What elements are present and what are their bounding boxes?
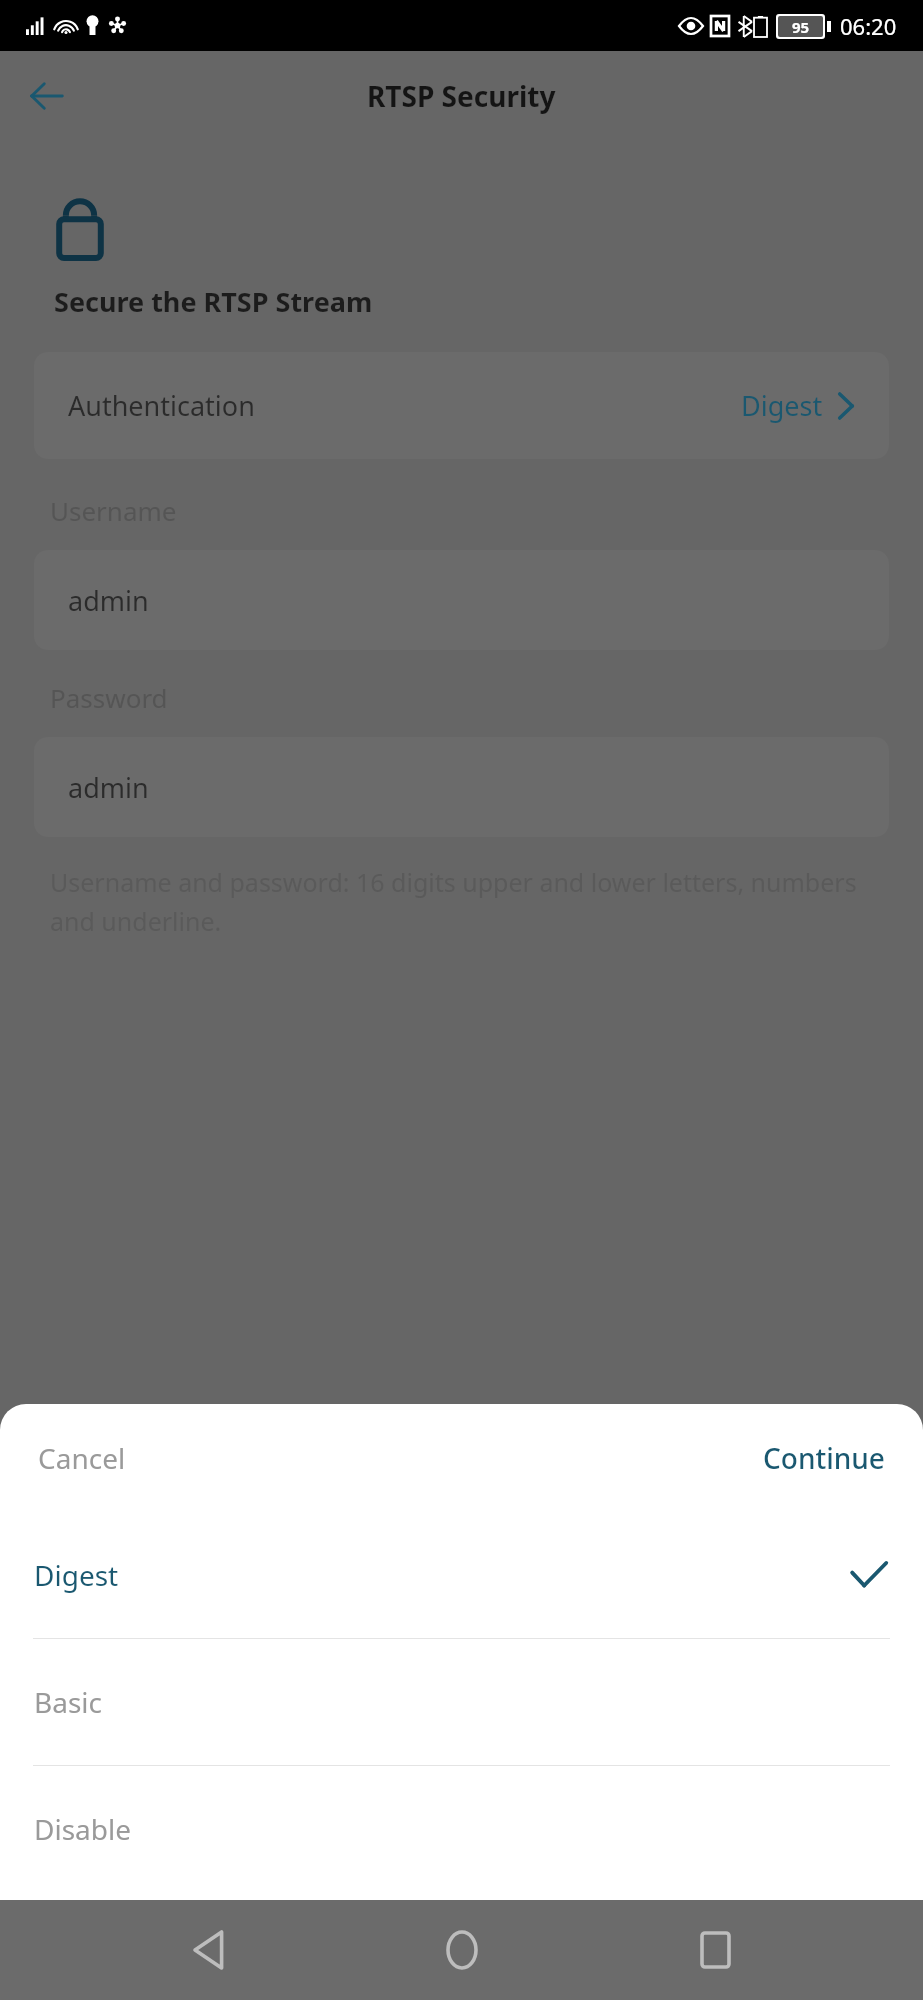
staticText: 06:20 — [840, 11, 897, 41]
button[interactable]: Home — [417, 1905, 507, 1995]
staticText: Authentication — [68, 387, 255, 424]
button[interactable]: Basic — [0, 1639, 923, 1765]
button[interactable]: Recents — [670, 1905, 760, 1995]
button[interactable]: admin — [34, 737, 889, 837]
staticText: Digest — [741, 387, 823, 424]
staticText: Password — [50, 680, 168, 715]
staticText: RTSP Security — [367, 77, 556, 115]
staticText: admin — [68, 582, 149, 619]
button[interactable]: Continue — [759, 1429, 889, 1487]
staticText: Disable — [34, 1810, 132, 1848]
staticText: Digest — [34, 1556, 119, 1594]
staticText: admin — [68, 769, 149, 806]
staticText: Username — [50, 493, 177, 528]
button[interactable]: Back — [16, 65, 78, 127]
staticText: Cancel — [38, 1439, 126, 1477]
button[interactable]: admin — [34, 550, 889, 650]
staticText: Continue — [763, 1439, 885, 1477]
button[interactable]: Disable — [0, 1766, 923, 1892]
staticText: 95 — [792, 17, 810, 37]
button[interactable]: Cancel — [34, 1429, 130, 1487]
staticText: Secure the RTSP Stream — [54, 283, 373, 320]
staticText: Basic — [34, 1683, 102, 1721]
button[interactable]: Authentication — [34, 352, 889, 459]
button[interactable]: Digest — [0, 1512, 923, 1638]
button[interactable]: Back — [164, 1905, 254, 1995]
